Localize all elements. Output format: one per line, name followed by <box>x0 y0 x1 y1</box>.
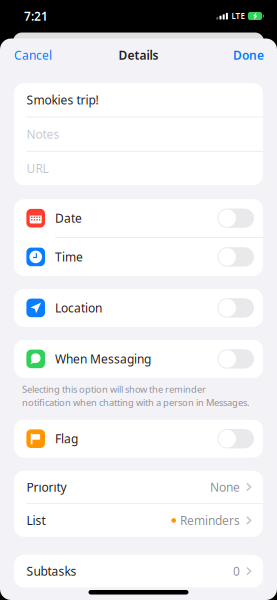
staticText: Selecting this option will show the remi… <box>22 383 206 395</box>
button[interactable]: Date <box>14 199 263 237</box>
staticText: Reminders <box>180 512 240 528</box>
staticText: Details <box>118 47 158 63</box>
staticText: LTE <box>231 11 244 21</box>
button[interactable]: URL <box>14 152 263 185</box>
staticText: 0 <box>233 563 240 579</box>
staticText: Cancel <box>14 47 52 63</box>
staticText: notification when chatting with a person… <box>22 396 250 409</box>
button[interactable]: List <box>14 504 263 537</box>
button[interactable]: Done <box>219 38 277 71</box>
staticText: Date <box>55 210 82 226</box>
staticText: Time <box>55 249 83 265</box>
staticText: When Messaging <box>55 351 151 367</box>
staticText: Location <box>55 300 102 316</box>
button[interactable]: Cancel <box>0 38 66 71</box>
button[interactable]: Smokies trip! <box>14 83 263 117</box>
button[interactable]: Time <box>14 238 263 276</box>
button[interactable]: Flag <box>14 420 263 458</box>
button[interactable]: Subtasks <box>14 555 263 587</box>
staticText: 7:21 <box>24 8 48 24</box>
staticText: None <box>210 479 240 495</box>
button[interactable]: When Messaging <box>14 340 263 378</box>
button[interactable]: Location <box>14 289 263 327</box>
button[interactable]: Notes <box>14 117 263 151</box>
staticText: Subtasks <box>26 563 76 579</box>
staticText: Flag <box>55 431 78 447</box>
staticText: Done <box>233 47 264 63</box>
staticText: Notes <box>26 126 59 142</box>
staticText: Smokies trip! <box>26 92 98 108</box>
button[interactable]: Priority <box>14 471 263 503</box>
staticText: List <box>26 512 45 528</box>
staticText: Priority <box>26 479 66 495</box>
staticText: URL <box>26 160 48 176</box>
